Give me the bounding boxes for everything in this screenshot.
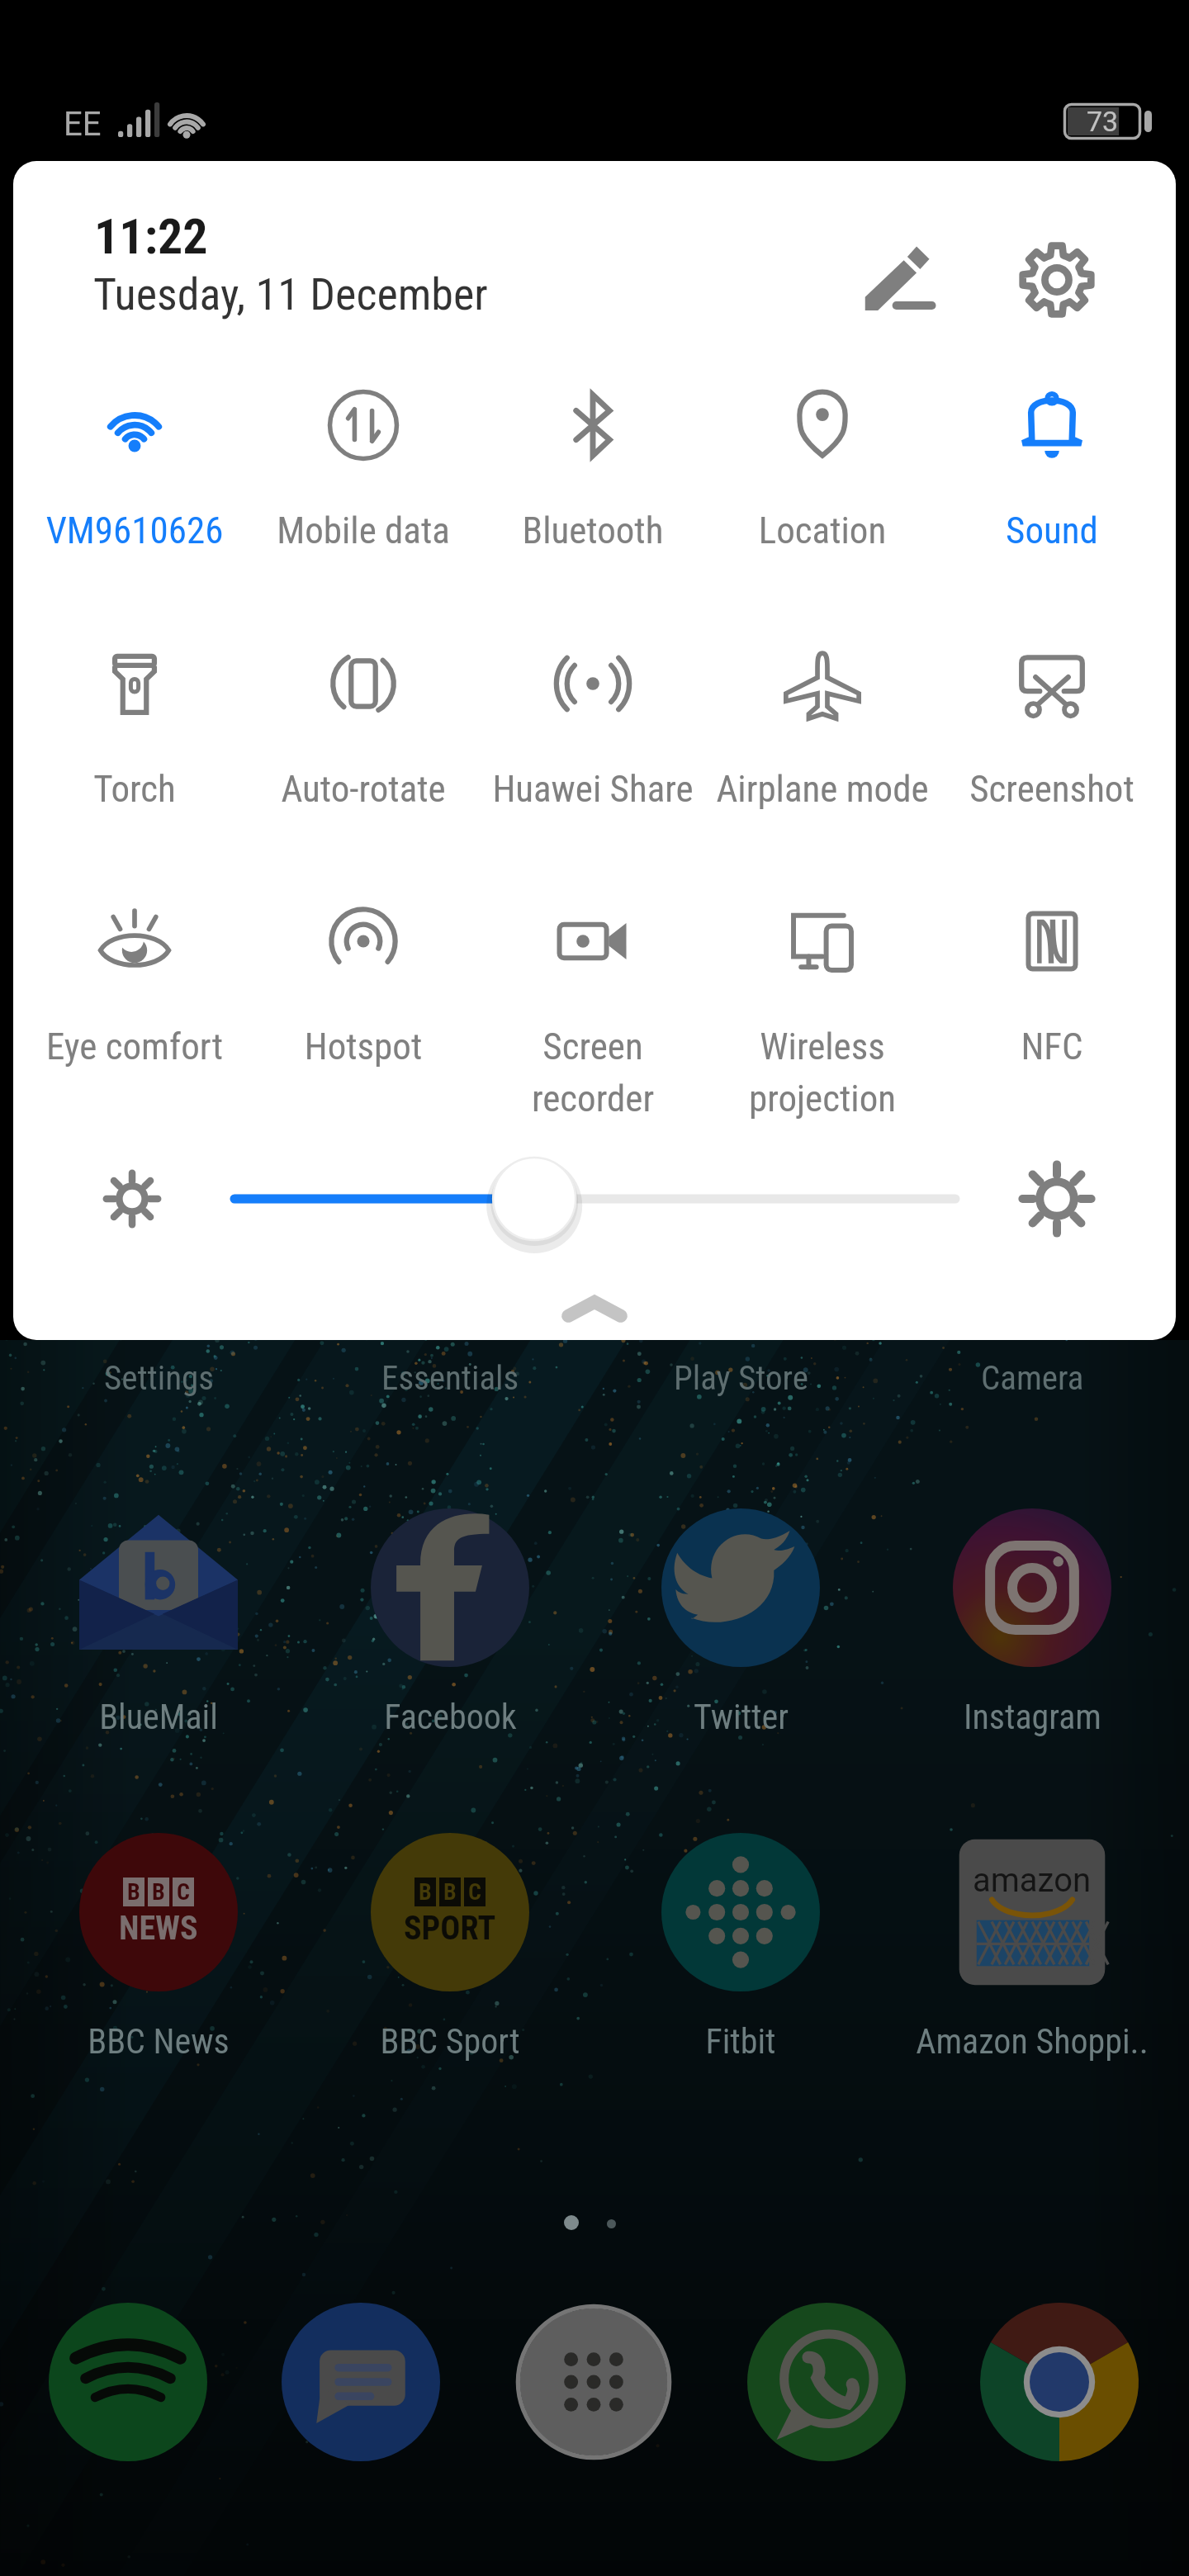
staticText: Airplane mode <box>674 767 971 811</box>
staticText: Amazon Shoppi.. <box>916 2021 1149 2062</box>
staticText: B <box>443 1878 457 1906</box>
staticText: amazon <box>973 1861 1092 1900</box>
button[interactable]: Mobile data <box>215 361 512 551</box>
button[interactable]: Wireless projection <box>674 877 971 1067</box>
staticText: Screen recorder <box>490 1025 696 1120</box>
staticText: Auto-rotate <box>215 767 512 811</box>
button[interactable]: B <box>14 1833 303 2062</box>
button[interactable]: Facebook <box>306 1508 594 1737</box>
staticText: Wireless projection <box>719 1025 926 1120</box>
staticText: C <box>177 1878 190 1906</box>
staticText: B <box>152 1878 165 1906</box>
staticText: Mobile data <box>215 509 512 552</box>
staticText: EE <box>64 105 102 144</box>
staticText: Hotspot <box>260 1025 467 1068</box>
staticText: Facebook <box>384 1697 517 1737</box>
staticText: C <box>468 1878 481 1906</box>
button[interactable]: Torch <box>13 619 283 809</box>
staticText: BBC News <box>88 2021 230 2062</box>
staticText: SPORT <box>404 1909 496 1948</box>
button[interactable]: Location <box>674 361 971 551</box>
staticText: Play Store <box>674 1358 808 1398</box>
staticText: Torch <box>13 767 283 811</box>
staticText: Twitter <box>694 1697 789 1737</box>
staticText: NEWS <box>119 1909 198 1948</box>
button[interactable]: Airplane mode <box>674 619 971 809</box>
button[interactable]: Instagram <box>888 1508 1177 1737</box>
button[interactable]: Fitbit <box>596 1833 885 2062</box>
staticText: Instagram <box>964 1697 1101 1737</box>
button[interactable]: Collapse panel <box>520 1263 669 1340</box>
button[interactable]: Hotspot <box>215 877 512 1067</box>
button[interactable]: Screen recorder <box>444 877 741 1067</box>
staticText: Screenshot <box>903 767 1176 811</box>
staticText: Essentials <box>381 1358 519 1398</box>
button[interactable]: NFC <box>903 877 1176 1067</box>
button[interactable]: BlueMail <box>14 1508 303 1737</box>
staticText: 73 <box>1087 105 1119 138</box>
button[interactable]: amazon <box>888 1833 1177 2062</box>
staticText: Location <box>674 509 971 552</box>
button[interactable]: Messages <box>278 2299 443 2465</box>
staticText: Fitbit <box>705 2021 776 2062</box>
button[interactable]: Bluetooth <box>444 361 741 551</box>
staticText: Sound <box>903 509 1176 552</box>
staticText: Huawei Share <box>444 767 741 811</box>
button[interactable]: Settings <box>996 219 1118 341</box>
button[interactable]: VM9610626 <box>13 361 283 551</box>
button[interactable]: Huawei Share <box>444 619 741 809</box>
staticText: Bluetooth <box>444 509 741 552</box>
staticText: Tuesday, 11 December <box>93 268 488 320</box>
staticText: Settings <box>104 1358 214 1398</box>
staticText: NFC <box>949 1025 1155 1068</box>
button[interactable]: Edit quick settings <box>838 219 960 341</box>
button[interactable]: Screenshot <box>903 619 1176 809</box>
button[interactable]: Eye comfort <box>13 877 283 1067</box>
staticText: BlueMail <box>99 1697 218 1737</box>
staticText: B <box>127 1878 140 1906</box>
button[interactable]: Twitter <box>596 1508 885 1737</box>
button[interactable]: Brightness <box>182 1141 1007 1257</box>
button[interactable]: B <box>306 1833 594 2062</box>
staticText: 11:22 <box>94 207 208 265</box>
staticText: B <box>419 1878 432 1906</box>
staticText: VM9610626 <box>13 509 283 552</box>
button[interactable]: Auto-rotate <box>215 619 512 809</box>
button[interactable]: Chrome <box>977 2299 1142 2465</box>
staticText: Camera <box>981 1358 1084 1398</box>
button[interactable]: WhatsApp <box>744 2299 909 2465</box>
button[interactable]: AppDrawer <box>511 2299 676 2465</box>
staticText: Eye comfort <box>31 1025 238 1068</box>
button[interactable]: Spotify <box>45 2299 211 2465</box>
staticText: BBC Sport <box>380 2021 520 2062</box>
button[interactable]: Sound <box>903 361 1176 551</box>
